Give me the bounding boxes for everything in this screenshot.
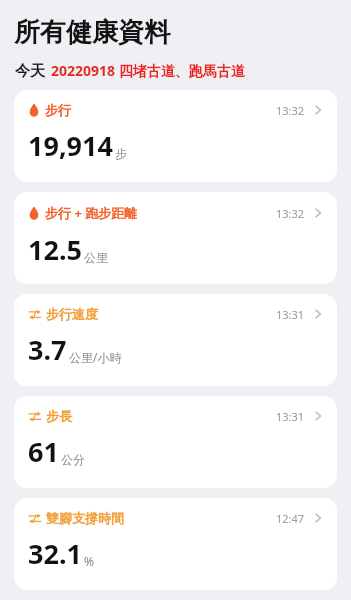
other: Open 步行 details [313, 103, 323, 117]
staticText: 公里 [84, 250, 108, 265]
staticText: 步行速度 [46, 306, 98, 322]
staticText: 3.7 [28, 331, 67, 368]
staticText: 61 [28, 433, 59, 470]
staticText: 步長 [46, 408, 72, 424]
staticText: 公里/小時 [69, 349, 122, 365]
staticText: 12:47 [276, 511, 305, 526]
staticText: 32.1 [28, 535, 82, 572]
other: Open 雙腳支撐時間 details [313, 511, 323, 525]
staticText: 13:32 [276, 103, 305, 118]
staticText: 所有健康資料 [14, 16, 170, 49]
staticText: % [84, 553, 94, 569]
staticText: 13:32 [276, 206, 305, 221]
staticText: 13:31 [276, 409, 305, 424]
other: Open 步長 details [313, 409, 323, 423]
button[interactable]: 步行 [14, 90, 337, 182]
button[interactable]: 步長 [14, 396, 337, 488]
button[interactable]: 步行 + 跑步距離 [14, 192, 337, 284]
other: Open 步行 + 跑步距離 details [313, 206, 323, 220]
staticText: 公分 [61, 452, 85, 467]
staticText: 19,914 [28, 127, 113, 164]
staticText: 13:31 [276, 307, 305, 322]
button[interactable]: 雙腳支撐時間 [14, 498, 337, 590]
other: Open 步行速度 details [313, 307, 323, 321]
staticText: 步行 [45, 102, 71, 118]
staticText: 今天 [15, 62, 45, 81]
staticText: 雙腳支撐時間 [46, 510, 124, 526]
staticText: 20220918 四堵古道、跑馬古道 [51, 61, 245, 80]
button[interactable]: 步行速度 [14, 294, 337, 386]
staticText: 步行 + 跑步距離 [45, 204, 138, 222]
staticText: 12.5 [28, 231, 82, 268]
staticText: 步 [115, 146, 127, 161]
